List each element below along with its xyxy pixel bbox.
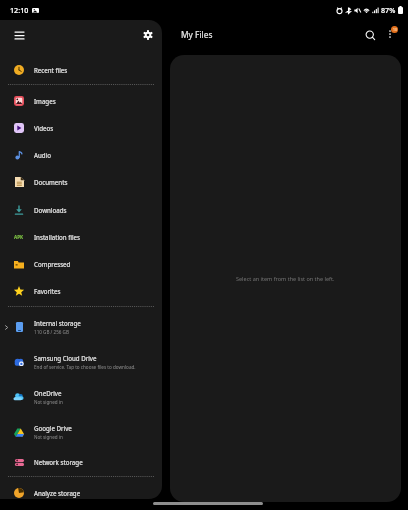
button[interactable]: Images xyxy=(0,88,162,114)
staticText: Analyze storage xyxy=(34,489,81,497)
staticText: Audio xyxy=(34,151,51,159)
staticText: Documents xyxy=(34,178,68,186)
staticText: Network storage xyxy=(34,458,83,466)
button[interactable]: Settings xyxy=(137,24,159,46)
button[interactable]: Samsung Cloud Drive xyxy=(0,347,162,377)
staticText: Select an item from the list on the left… xyxy=(236,275,335,282)
staticText: Samsung Cloud Drive xyxy=(34,354,97,362)
staticText: Installation files xyxy=(34,233,81,241)
button[interactable]: APK xyxy=(0,224,162,250)
button[interactable]: Documents xyxy=(0,169,162,195)
staticText: Not signed in xyxy=(34,399,63,405)
staticText: Images xyxy=(34,97,56,105)
button[interactable]: Analyze storage xyxy=(0,480,162,499)
button[interactable]: Compressed xyxy=(0,251,162,277)
button[interactable]: Favorites xyxy=(0,278,162,304)
staticText: Google Drive xyxy=(34,424,72,432)
staticText: Downloads xyxy=(34,206,67,214)
button[interactable]: Internal storage xyxy=(0,312,162,342)
button[interactable]: Google Drive xyxy=(0,417,162,447)
staticText: Internal storage xyxy=(34,319,81,327)
button[interactable]: Downloads xyxy=(0,197,162,223)
button[interactable]: More options xyxy=(378,22,402,46)
staticText: OneDrive xyxy=(34,389,62,397)
staticText: Compressed xyxy=(34,260,71,268)
staticText: Videos xyxy=(34,124,54,132)
staticText: 87% xyxy=(381,5,396,15)
button[interactable]: Audio xyxy=(0,142,162,168)
button[interactable]: Videos xyxy=(0,115,162,141)
staticText: Favorites xyxy=(34,287,61,295)
staticText: 10 xyxy=(393,27,397,32)
staticText: Not signed in xyxy=(34,434,63,440)
button[interactable]: Network storage xyxy=(0,449,162,475)
staticText: 12:10 xyxy=(10,5,29,15)
staticText: 110 GB / 256 GB xyxy=(34,329,69,335)
button[interactable]: Recent files xyxy=(0,57,162,83)
button[interactable]: OneDrive xyxy=(0,382,162,412)
staticText: Recent files xyxy=(34,66,68,74)
button[interactable]: Search xyxy=(358,23,382,47)
button[interactable]: Navigation menu xyxy=(8,24,30,46)
staticText: APK xyxy=(14,234,24,240)
staticText: My Files xyxy=(181,29,213,40)
staticText: End of service. Tap to choose files to d… xyxy=(34,364,136,370)
